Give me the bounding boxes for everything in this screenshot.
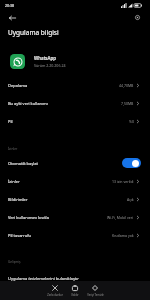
staticText: Gelişmiş bbox=[8, 260, 21, 264]
staticText: 20:38 bbox=[5, 3, 14, 8]
button[interactable]: Pil tasarrufu bbox=[0, 226, 150, 244]
button[interactable]: Bildirimler bbox=[0, 190, 150, 208]
staticText: Veriyi Temizle bbox=[87, 293, 104, 297]
button[interactable]: Help bbox=[133, 13, 142, 22]
button[interactable]: Pil bbox=[0, 112, 150, 130]
staticText: Veri kullanımını kısıtla bbox=[8, 215, 49, 220]
staticText: %0 bbox=[129, 119, 134, 124]
staticText: Otomatik başlat bbox=[8, 161, 38, 166]
staticText: Wi-Fi, Mobil veri bbox=[107, 215, 134, 220]
button[interactable]: Otomatik başlat bbox=[0, 154, 150, 172]
button[interactable]: Veri kullanımını kısıtla bbox=[0, 208, 150, 226]
staticText: İzinler bbox=[8, 179, 20, 184]
staticText: 44,70MB bbox=[119, 83, 134, 88]
staticText: 7,50MB bbox=[121, 101, 134, 106]
staticText: Sürüm 2.20.206.24 bbox=[34, 63, 66, 68]
staticText: Uygulama bilgisi bbox=[8, 28, 59, 37]
button[interactable]: Bu ayki veri kullanımı bbox=[0, 94, 150, 112]
button[interactable]: Kaldır bbox=[65, 285, 85, 297]
button[interactable]: Veriyi Temizle bbox=[85, 285, 105, 297]
staticText: Bildirimler bbox=[8, 197, 28, 202]
staticText: 13 izin verildi bbox=[112, 179, 134, 184]
staticText: Depolama bbox=[8, 83, 28, 88]
staticText: İzinler bbox=[8, 147, 18, 151]
staticText: WhatsApp bbox=[34, 55, 57, 61]
staticText: Bu ayki veri kullanımı bbox=[8, 101, 48, 106]
staticText: Kısıtlama yok bbox=[112, 233, 134, 238]
staticText: Kaldır bbox=[71, 293, 79, 297]
staticText: Uygulama önizlemelerini bulanıklaştır bbox=[8, 276, 79, 281]
button[interactable]: Depolama bbox=[0, 76, 150, 94]
button[interactable]: Back bbox=[7, 13, 17, 23]
staticText: Pil tasarrufu bbox=[8, 233, 31, 238]
button[interactable]: Zorla durdur bbox=[45, 285, 65, 297]
button[interactable]: İzinler bbox=[0, 172, 150, 190]
staticText: Pil bbox=[8, 119, 13, 124]
staticText: Açık bbox=[127, 197, 134, 202]
button[interactable]: Uygulama önizlemelerini bulanıklaştır bbox=[0, 269, 150, 287]
staticText: Zorla durdur bbox=[47, 293, 63, 297]
button[interactable]: WhatsApp bbox=[0, 53, 150, 70]
